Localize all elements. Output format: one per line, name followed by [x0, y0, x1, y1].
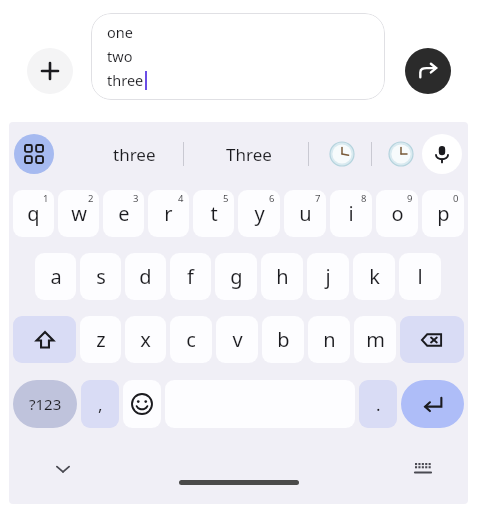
button[interactable]: e	[103, 190, 144, 237]
button[interactable]: three	[87, 122, 182, 186]
button[interactable]: b	[262, 316, 304, 363]
staticText: 9	[407, 192, 413, 205]
staticText: .	[376, 393, 381, 416]
button[interactable]: ,	[81, 380, 119, 428]
staticText: x	[140, 326, 151, 353]
staticText: ?123	[29, 394, 62, 414]
staticText: t	[210, 200, 218, 227]
staticText: two	[107, 46, 133, 70]
staticText: e	[118, 200, 130, 227]
staticText: u	[299, 200, 312, 227]
staticText: q	[27, 200, 40, 227]
button[interactable]: f	[170, 253, 211, 300]
staticText: o	[391, 200, 404, 227]
staticText: l	[417, 263, 423, 290]
button[interactable]: i	[330, 190, 372, 237]
staticText: p	[437, 200, 450, 227]
button[interactable]: n	[308, 316, 350, 363]
button[interactable]: h	[261, 253, 303, 300]
staticText: v	[232, 326, 243, 353]
button[interactable]: Clock emoji	[381, 134, 421, 174]
staticText: g	[230, 263, 243, 290]
staticText: h	[276, 263, 289, 290]
staticText: c	[186, 326, 196, 353]
button[interactable]: u	[284, 190, 326, 237]
button[interactable]: w	[58, 190, 99, 237]
button[interactable]: v	[216, 316, 258, 363]
staticText: w	[71, 200, 87, 227]
button[interactable]: .	[359, 380, 397, 428]
staticText: m	[366, 326, 385, 353]
button[interactable]: Clock emoji	[322, 134, 362, 174]
staticText: s	[96, 263, 106, 290]
button[interactable]: Voice input	[422, 134, 462, 174]
staticText: f	[187, 263, 194, 290]
staticText: n	[323, 326, 336, 353]
staticText: z	[96, 326, 106, 353]
button[interactable]: z	[80, 316, 121, 363]
button[interactable]: Backspace	[400, 316, 464, 363]
button[interactable]: Send	[405, 48, 451, 94]
button[interactable]: q	[13, 190, 54, 237]
button[interactable]: t	[193, 190, 234, 237]
staticText: Three	[226, 143, 272, 166]
button[interactable]: Emoji	[123, 380, 161, 428]
button[interactable]: c	[170, 316, 212, 363]
button[interactable]: g	[215, 253, 257, 300]
button[interactable]: Change keyboard	[408, 454, 438, 484]
button[interactable]: k	[353, 253, 395, 300]
button[interactable]: Enter	[401, 380, 464, 428]
staticText: 2	[88, 192, 94, 205]
staticText: d	[139, 263, 152, 290]
staticText: b	[277, 326, 290, 353]
button[interactable]: one	[91, 13, 385, 100]
staticText: three	[113, 143, 156, 166]
staticText: 0	[453, 192, 459, 205]
button[interactable]: o	[376, 190, 418, 237]
staticText: y	[254, 200, 265, 227]
staticText: k	[369, 263, 380, 290]
staticText: 7	[315, 192, 321, 205]
staticText: r	[164, 200, 173, 227]
staticText: ,	[98, 393, 103, 416]
staticText: 6	[269, 192, 275, 205]
button[interactable]: ?123	[13, 380, 77, 428]
button[interactable]: d	[125, 253, 166, 300]
staticText: 1	[43, 192, 49, 205]
button[interactable]: Three	[199, 122, 299, 186]
button[interactable]: Shift	[13, 316, 76, 363]
button[interactable]: l	[399, 253, 441, 300]
button[interactable]: Toolbar	[14, 134, 54, 174]
staticText: 5	[223, 192, 229, 205]
button[interactable]: y	[238, 190, 280, 237]
staticText: 8	[361, 192, 367, 205]
button[interactable]: j	[307, 253, 349, 300]
staticText: 4	[178, 192, 184, 205]
staticText: j	[325, 263, 331, 290]
button[interactable]: p	[422, 190, 464, 237]
button[interactable]: x	[125, 316, 166, 363]
button[interactable]: s	[80, 253, 121, 300]
staticText: three	[107, 70, 144, 90]
button[interactable]: a	[35, 253, 76, 300]
button[interactable]: m	[354, 316, 396, 363]
button[interactable]: Add attachment	[27, 48, 73, 94]
staticText: one	[107, 22, 133, 46]
button[interactable]: r	[148, 190, 189, 237]
button[interactable]: Hide keyboard	[47, 453, 79, 485]
staticText: 3	[133, 192, 139, 205]
staticText: a	[50, 263, 62, 290]
staticText: i	[348, 200, 354, 227]
